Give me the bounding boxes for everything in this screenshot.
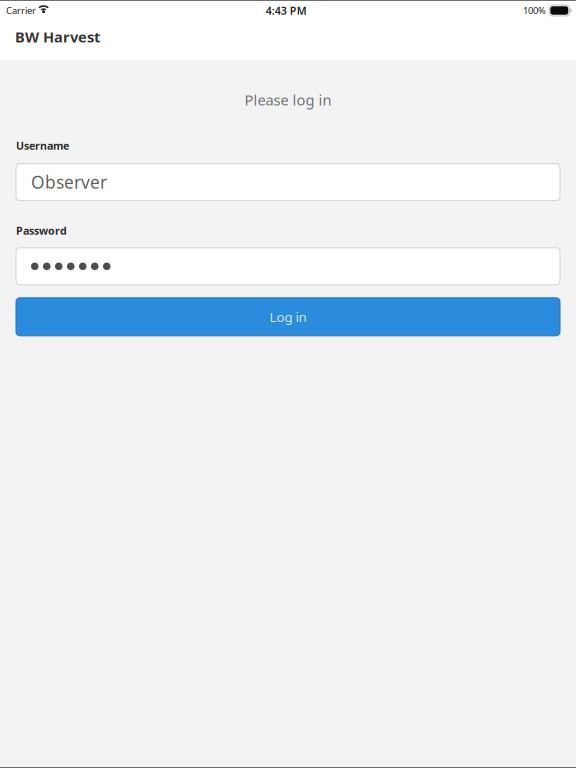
staticText: 100% bbox=[523, 4, 546, 17]
staticText: BW Harvest bbox=[15, 27, 100, 46]
staticText: Username bbox=[16, 138, 69, 153]
staticText: 4:43 PM bbox=[266, 3, 307, 18]
staticText: Log in bbox=[269, 308, 306, 326]
button[interactable]: Log in bbox=[16, 298, 560, 336]
staticText: Password bbox=[16, 224, 67, 238]
staticText: Please log in bbox=[244, 90, 331, 109]
staticText: Carrier bbox=[6, 4, 36, 17]
staticText: Observer bbox=[31, 171, 107, 194]
